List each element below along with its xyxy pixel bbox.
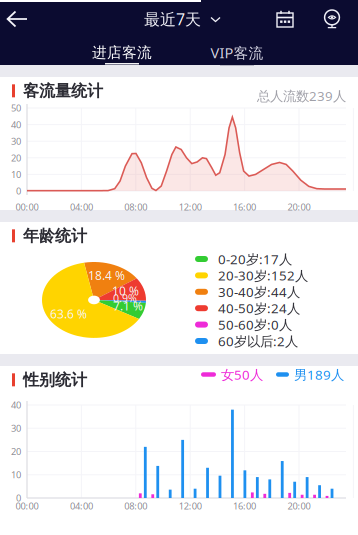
button[interactable]: Calendar (270, 4, 300, 34)
staticText: 20:00 (287, 500, 310, 512)
staticText: 40 (11, 399, 21, 411)
staticText: 性别统计 (23, 370, 87, 390)
staticText: 40 (11, 118, 21, 131)
staticText: 10 (11, 469, 21, 481)
staticText: 年龄统计 (23, 226, 87, 246)
staticText: 0-20岁:17人 (218, 250, 292, 268)
staticText: 30-40岁:44人 (218, 283, 300, 301)
staticText: 7.1 % (113, 298, 143, 314)
staticText: 男189人 (294, 366, 344, 383)
staticText: 08:00 (124, 500, 147, 512)
staticText: 女50人 (221, 366, 263, 383)
staticText: 63.6 % (50, 306, 87, 322)
staticText: 0 (16, 185, 21, 197)
staticText: 50-60岁:0人 (218, 316, 292, 333)
button[interactable]: 进店客流 (80, 41, 164, 67)
staticText: 总人流数239人 (257, 87, 346, 105)
staticText: 04:00 (70, 201, 93, 213)
staticText: 00:00 (15, 201, 38, 213)
staticText: 16:00 (233, 201, 256, 213)
staticText: 16:00 (233, 500, 256, 512)
staticText: 40-50岁:24人 (218, 299, 300, 317)
staticText: 最近7天 (144, 8, 201, 30)
staticText: 客流量统计 (23, 81, 103, 101)
button[interactable]: Back (0, 4, 36, 34)
staticText: 0.9% (113, 291, 137, 305)
staticText: 00:00 (15, 500, 38, 512)
staticText: 20-30岁:152人 (218, 266, 308, 284)
staticText: 10 % (112, 283, 139, 299)
staticText: VIP客流 (210, 43, 263, 62)
staticText: 30 (11, 135, 21, 147)
staticText: 30 (11, 422, 21, 434)
button[interactable]: 最近7天 (138, 4, 227, 34)
staticText: 12:00 (179, 500, 202, 512)
staticText: 08:00 (124, 201, 147, 213)
staticText: 50 (11, 102, 21, 114)
staticText: 0 (16, 492, 21, 504)
button[interactable]: VIP客流 (195, 41, 279, 67)
staticText: 进店客流 (92, 43, 152, 61)
staticText: 20 (11, 152, 21, 164)
staticText: 10 (11, 168, 21, 181)
staticText: 04:00 (70, 500, 93, 512)
staticText: 18.4 % (88, 267, 125, 283)
staticText: 60岁以后:2人 (218, 332, 298, 350)
staticText: 20:00 (287, 201, 310, 213)
button[interactable]: Camera (317, 4, 347, 34)
staticText: 12:00 (179, 201, 202, 213)
staticText: 20 (11, 445, 21, 458)
